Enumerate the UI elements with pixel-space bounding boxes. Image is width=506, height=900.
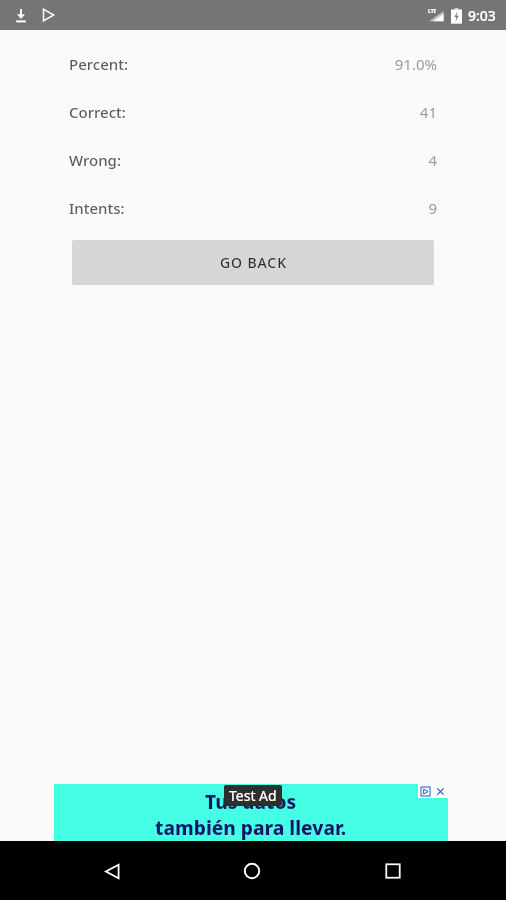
button[interactable]: Tus datos [54,784,448,841]
button[interactable]: Intents: [0,184,506,232]
button[interactable]: Wrong: [0,136,506,184]
button[interactable]: Home [224,843,280,899]
button[interactable]: Correct: [0,88,506,136]
staticText: Percent: [69,54,129,74]
staticText: Test Ad [229,786,277,805]
staticText: Intents: [69,198,125,218]
button[interactable]: Percent: [0,40,506,88]
staticText: 9 [428,198,437,218]
staticText: Wrong: [69,150,121,170]
button[interactable]: Back [84,843,140,899]
staticText: también para llevar. [155,815,347,841]
staticText: Tus datos [205,789,297,815]
staticText: LTE [428,8,437,15]
staticText: 9:03 [468,6,496,25]
staticText: 4 [428,150,437,170]
staticText: 41 [419,102,437,122]
staticText: 91.0% [394,54,437,74]
button[interactable]: Recent apps [365,843,421,899]
button[interactable]: Close ad [433,784,448,798]
button[interactable]: Ad choices [418,784,433,798]
button[interactable]: GO BACK [72,240,434,285]
staticText: Correct: [69,102,126,122]
staticText: GO BACK [220,253,287,272]
